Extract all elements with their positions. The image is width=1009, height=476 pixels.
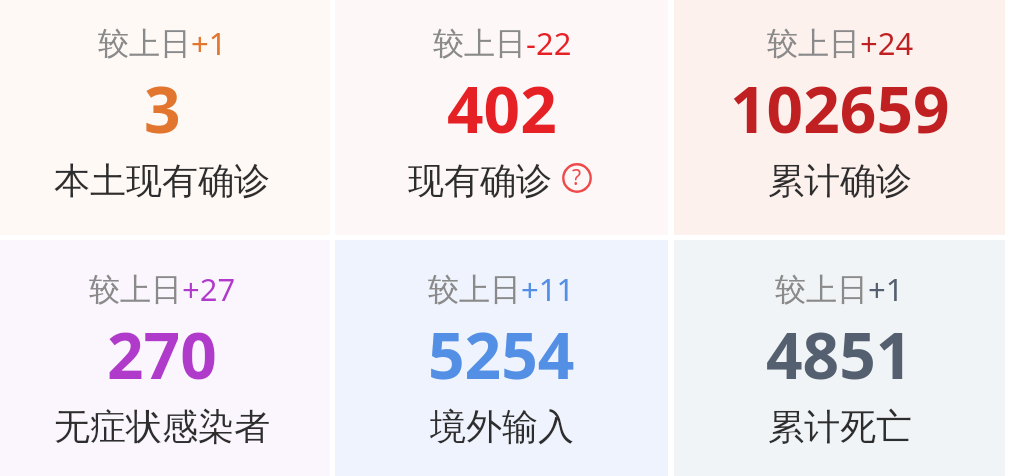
button[interactable]: 较上日	[0, 0, 330, 235]
staticText: 现有确诊	[408, 158, 552, 203]
staticText: 累计死亡	[768, 404, 912, 449]
staticText: 较上日	[98, 24, 191, 63]
staticText: 102659	[730, 65, 950, 152]
staticText: 3	[144, 65, 181, 152]
staticText: 4851	[766, 311, 913, 398]
staticText: 较上日	[775, 270, 868, 309]
staticText: 无症状感染者	[54, 404, 270, 449]
staticText: 境外输入	[430, 404, 574, 449]
staticText: ?	[572, 163, 582, 192]
staticText: +11	[521, 268, 575, 310]
staticText: 本土现有确诊	[54, 158, 270, 203]
button[interactable]: 较上日	[335, 240, 668, 476]
button[interactable]: 较上日	[335, 0, 668, 235]
staticText: 270	[107, 311, 217, 398]
button[interactable]: 较上日	[674, 0, 1005, 235]
staticText: +1	[191, 22, 227, 64]
staticText: +24	[860, 22, 914, 64]
staticText: 较上日	[767, 24, 860, 63]
staticText: 较上日	[433, 24, 526, 63]
button[interactable]: Help, what counts as active cases	[562, 163, 592, 193]
staticText: 402	[447, 65, 557, 152]
staticText: +27	[182, 268, 236, 310]
staticText: 较上日	[428, 270, 521, 309]
staticText: -22	[526, 22, 572, 64]
button[interactable]: 较上日	[0, 240, 330, 476]
staticText: +1	[868, 268, 904, 310]
button[interactable]: 较上日	[674, 240, 1005, 476]
staticText: 5254	[428, 311, 575, 398]
staticText: 较上日	[89, 270, 182, 309]
staticText: 累计确诊	[768, 158, 912, 203]
